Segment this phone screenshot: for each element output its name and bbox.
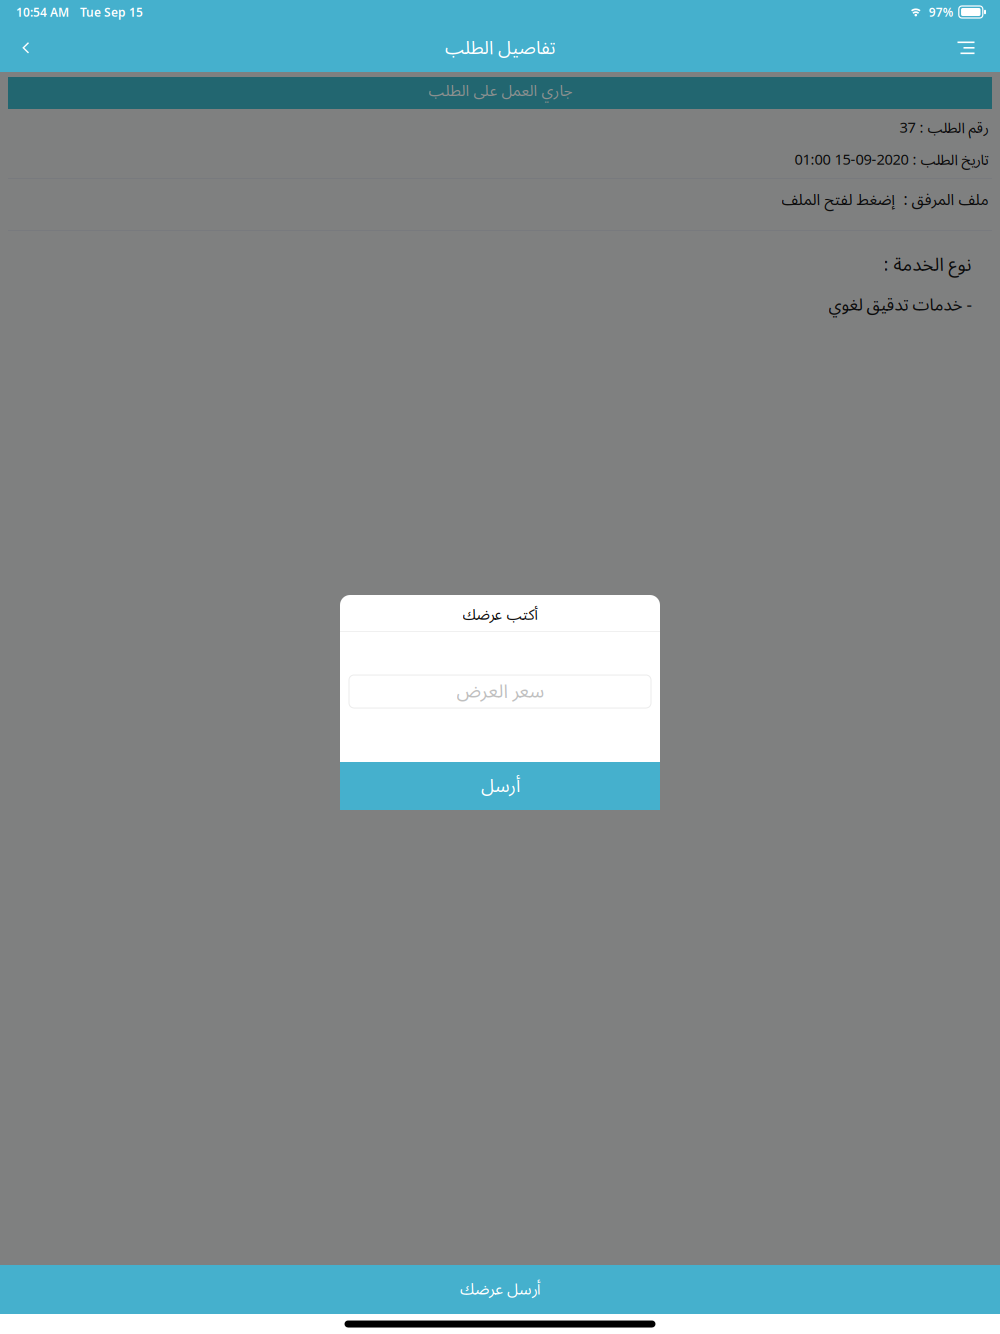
staticText: تفاصيل الطلب [444, 28, 555, 68]
staticText: أكتب عرضك [462, 599, 538, 631]
button[interactable]: Menu [940, 24, 992, 72]
button[interactable]: Back [2, 24, 50, 72]
staticText: رقم الطلب : 37 [899, 112, 988, 143]
staticText: - خدمات تدقيق لغوي [828, 287, 971, 323]
button[interactable]: أرسل عرضك [0, 1265, 1000, 1314]
staticText: 97% [929, 4, 954, 20]
staticText: نوع الخدمة : [883, 246, 971, 284]
button[interactable]: ملف المرفق : إضغط لفتح الملف [0, 179, 1000, 230]
staticText: 10:54 AM [16, 4, 69, 20]
staticText: Tue Sep 15 [80, 4, 143, 20]
staticText: تاريخ الطلب : 2020-09-15 01:00 [794, 144, 988, 175]
button[interactable]: أرسل [340, 762, 660, 810]
staticText: ملف المرفق : إضغط لفتح الملف [781, 184, 988, 216]
staticText: أرسل عرضك [459, 1273, 540, 1306]
staticText: جاري العمل على الطلب [428, 75, 572, 107]
staticText: أرسل [480, 766, 519, 806]
staticText: سعر العرض [456, 672, 544, 711]
button[interactable]: سعر العرض [340, 675, 660, 708]
